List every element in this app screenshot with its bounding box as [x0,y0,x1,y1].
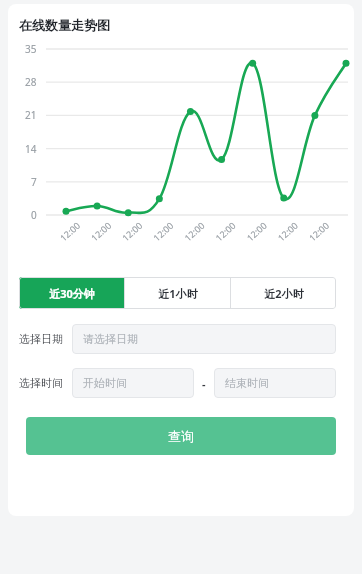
staticText: 请选择日期 [83,332,138,346]
staticText: 结束时间 [225,376,269,390]
button[interactable]: 开始时间 [72,368,194,398]
button[interactable]: 近1小时 [125,277,230,309]
staticText: 在线数量走势图 [19,17,110,33]
staticText: 开始时间 [83,376,127,390]
staticText: 近1小时 [158,286,198,301]
button[interactable]: 查询 [26,417,336,455]
staticText: 查询 [168,428,194,444]
staticText: 近2小时 [264,286,304,301]
button[interactable]: 近30分钟 [19,277,124,309]
button[interactable]: 选择日期 [72,324,336,354]
staticText: - [202,376,206,391]
staticText: 近30分钟 [49,286,95,301]
staticText: 选择时间 [19,376,63,390]
button[interactable]: 近2小时 [231,277,336,309]
staticText: 选择日期 [19,332,63,346]
button[interactable]: 结束时间 [214,368,336,398]
